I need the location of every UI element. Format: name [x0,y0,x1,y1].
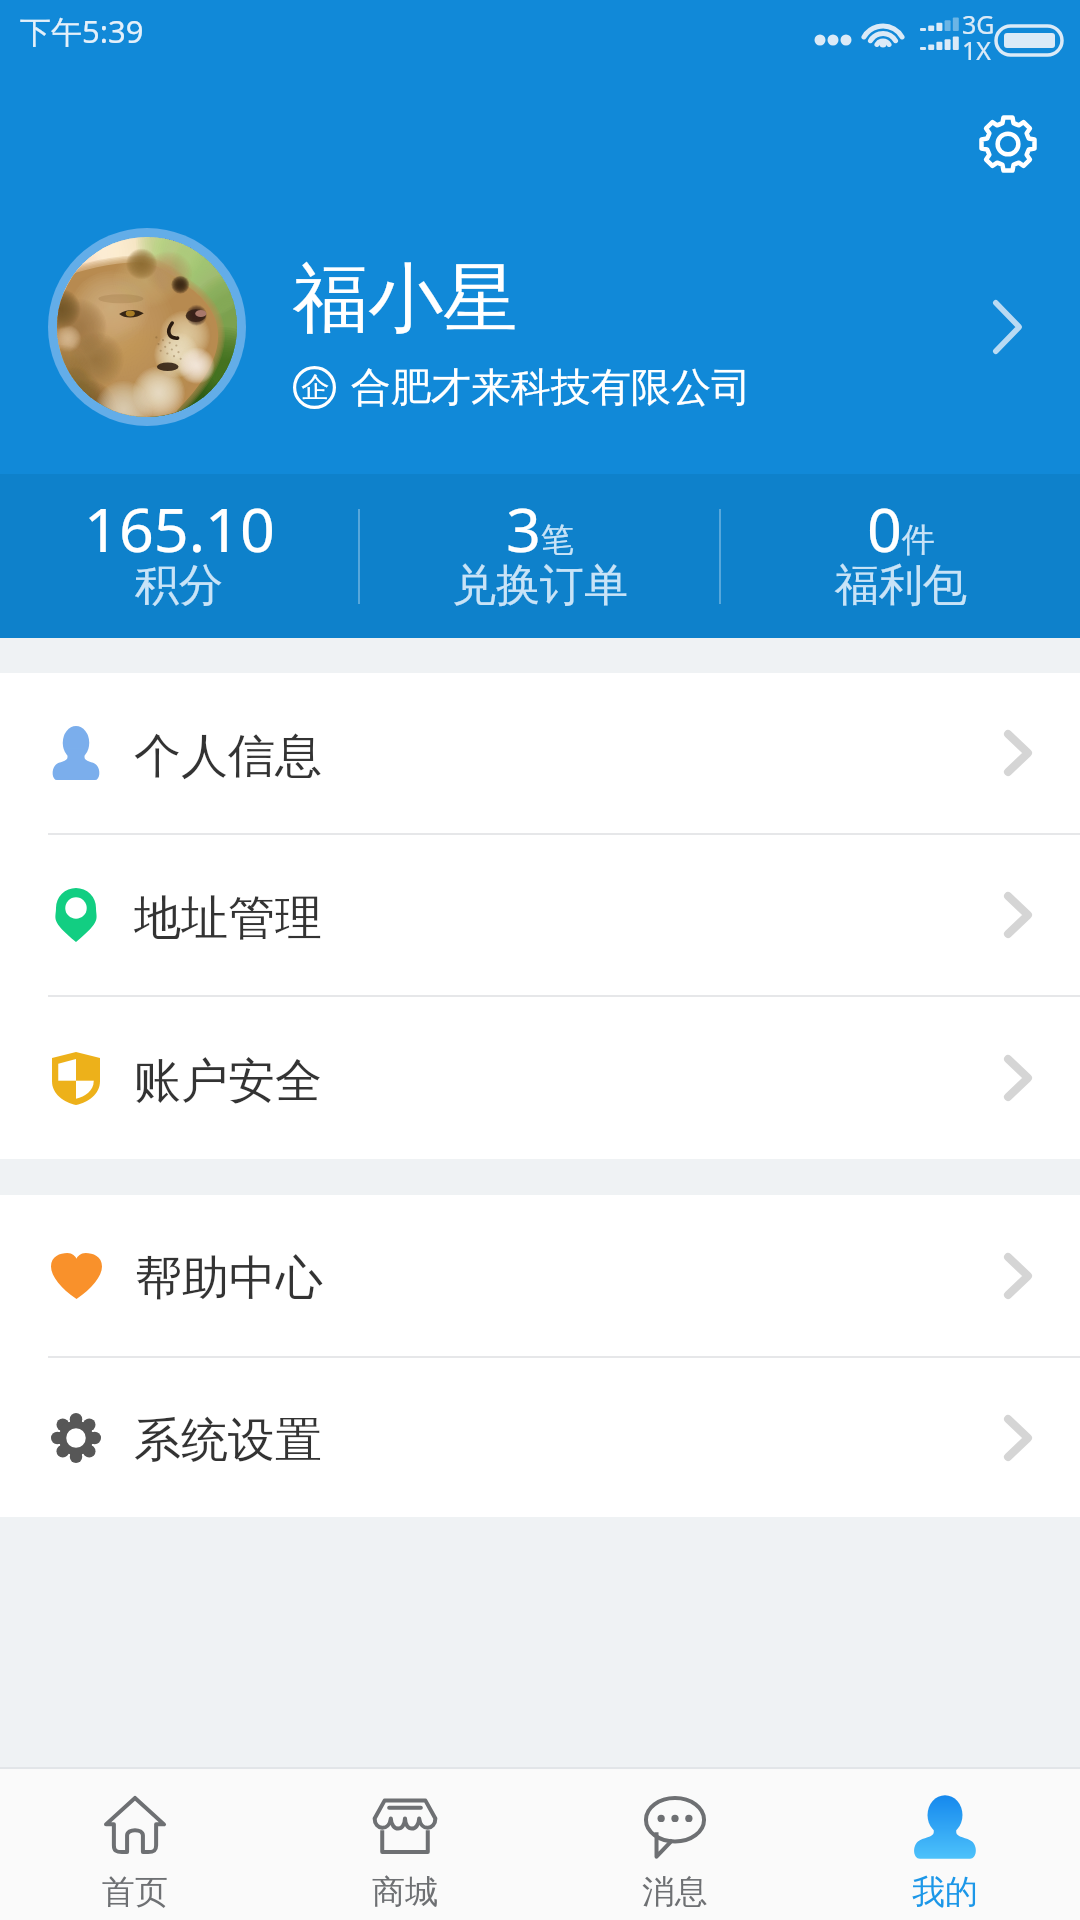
button[interactable]: 地址管理 [0,835,1080,995]
staticText: 积分 [135,558,223,613]
staticText: 地址管理 [134,889,322,948]
staticText: 165.10 [84,487,275,570]
button[interactable]: 账户安全 [0,997,1080,1159]
staticText: 0 [867,487,902,570]
staticText: 3G [962,7,995,41]
button[interactable]: 3 [360,474,719,638]
staticText: 兑换订单 [452,558,628,613]
staticText: 笔 [541,519,574,561]
button[interactable]: 商城 [270,1769,540,1920]
staticText: 1X [962,33,991,67]
button[interactable]: 我的 [810,1769,1080,1920]
staticText: 合肥才来科技有限公司 [351,362,751,412]
button[interactable]: 165.10 [0,474,358,638]
staticText: 福利包 [835,558,967,613]
button[interactable]: 系统设置 [0,1358,1080,1517]
staticText: 账户安全 [134,1052,322,1111]
staticText: 我的 [912,1871,978,1913]
staticText: 件 [902,519,935,561]
staticText: 下午5:39 [20,10,144,52]
button[interactable]: 福小星 [0,227,1080,427]
staticText: 商城 [372,1871,438,1913]
staticText: 系统设置 [134,1411,322,1470]
button[interactable]: 首页 [0,1769,270,1920]
staticText: 个人信息 [134,727,322,786]
staticText: 福小星 [293,252,518,346]
button[interactable]: 个人信息 [0,673,1080,833]
button[interactable]: 0 [721,474,1080,638]
button[interactable]: 帮助中心 [0,1195,1080,1356]
staticText: 帮助中心 [135,1249,323,1308]
staticText: 首页 [102,1871,168,1913]
staticText: 3 [506,487,541,570]
button[interactable]: 消息 [540,1769,810,1920]
button[interactable]: Settings [966,102,1050,186]
staticText: 企 [301,370,329,405]
staticText: 消息 [642,1871,708,1913]
